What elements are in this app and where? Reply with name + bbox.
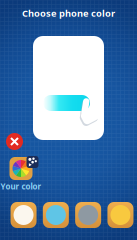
button[interactable]: Color swatch <box>75 202 101 228</box>
button[interactable]: Color swatch <box>43 202 69 228</box>
staticText: Choose phone color <box>22 7 115 19</box>
button[interactable]: Color swatch <box>107 202 133 228</box>
button[interactable]: Close <box>6 133 23 150</box>
button[interactable]: Your color <box>0 147 42 192</box>
staticText: Your color <box>0 181 41 192</box>
button[interactable]: Color swatch <box>10 202 36 228</box>
